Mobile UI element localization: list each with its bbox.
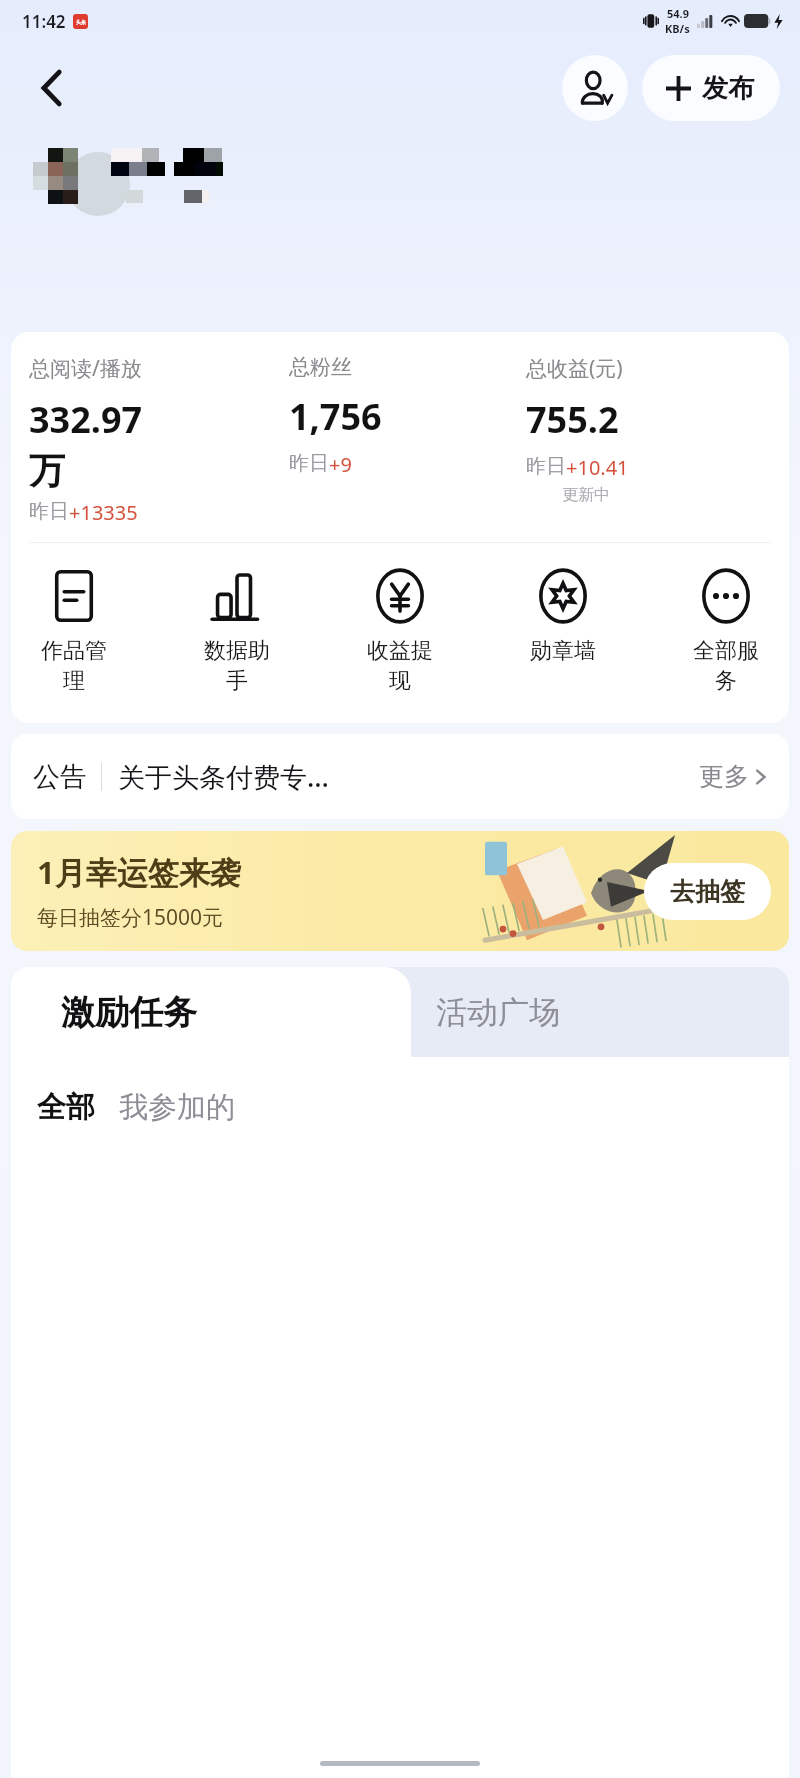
button[interactable]: 公告 [11,734,789,819]
staticText: 总阅读/播放 [29,354,142,383]
staticText: +13335 [69,499,138,526]
staticText: +10.41 [566,454,629,481]
staticText: 万 [29,448,65,493]
button[interactable]: 去抽签 [644,863,771,920]
button[interactable]: 1月幸运签来袭 [11,831,789,951]
staticText: 11:42 [22,10,66,33]
staticText: 作品管理 [32,637,116,695]
button[interactable]: 勋章墙 [510,569,616,665]
staticText: 昨日 [526,454,566,479]
button[interactable]: 收益提现 [347,569,453,695]
button[interactable]: 我参加的 [119,1089,235,1126]
staticText: 每日抽签分15000元 [37,903,224,932]
staticText: KB/s [665,21,690,36]
staticText: 1,756 [289,392,382,441]
staticText: 1月幸运签来袭 [37,851,241,893]
staticText: 勋章墙 [521,637,605,665]
staticText: 总粉丝 [289,354,352,380]
staticText: 去抽签 [670,876,745,907]
staticText: 数据助手 [195,637,279,695]
button[interactable]: 发布 [642,55,780,121]
button[interactable]: 活动广场 [207,967,789,1057]
staticText: 公告 [33,760,87,794]
staticText: 昨日 [29,499,69,524]
button[interactable]: Switch account [562,55,628,121]
staticText: 755.2 [526,395,619,444]
staticText: 头条 [76,19,86,25]
button[interactable]: Back [24,60,80,116]
button[interactable]: 全部 [37,1089,95,1126]
button[interactable]: 作品管理 [21,569,127,695]
staticText: 总收益(元) [526,354,623,383]
staticText: 我参加的 [119,1089,235,1126]
staticText: 54.9 [667,6,689,21]
staticText: 关于头条付费专… [118,758,699,795]
staticText: 更新中 [562,485,610,505]
button[interactable]: 激励任务 [11,967,411,1057]
staticText: 全部 [37,1089,95,1126]
staticText: 发布 [702,72,754,105]
staticText: 昨日 [289,451,329,476]
staticText: 收益提现 [358,637,442,695]
staticText: +9 [329,451,352,478]
staticText: 更多 [699,761,749,792]
staticText: 活动广场 [436,993,560,1032]
staticText: 激励任务 [61,991,197,1034]
staticText: 全部服务 [684,637,768,695]
staticText: 332.97 [29,395,143,444]
button[interactable]: 数据助手 [184,569,290,695]
button[interactable]: 全部服务 [673,569,779,695]
